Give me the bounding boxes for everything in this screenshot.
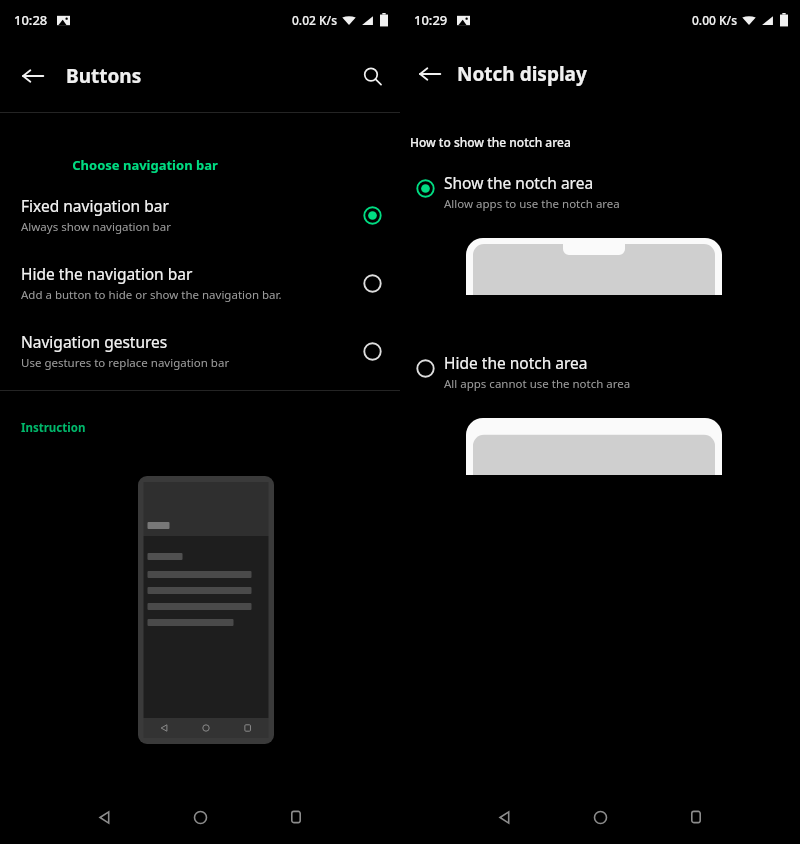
staticText: 10:29 (414, 11, 448, 29)
button[interactable]: Search (350, 54, 394, 98)
staticText: Show the notch area (444, 172, 594, 193)
staticText: Instruction (21, 420, 86, 436)
staticText: 0.02 K/s (292, 12, 338, 28)
button[interactable]: Recent apps (676, 797, 716, 837)
staticText: All apps cannot use the notch area (444, 376, 631, 392)
staticText: How to show the notch area (410, 134, 571, 150)
button[interactable]: Home (180, 797, 220, 837)
staticText: Buttons (66, 63, 142, 89)
button[interactable]: Unselected option (350, 329, 394, 373)
staticText: Hide the navigation bar (21, 263, 193, 284)
button[interactable]: Selected option (400, 172, 800, 216)
button[interactable]: Unselected option (350, 261, 394, 305)
button[interactable]: Back (484, 797, 524, 837)
button[interactable]: Selected option (403, 166, 447, 210)
button[interactable]: Recent apps (276, 797, 316, 837)
button[interactable]: Hide the navigation bar (0, 261, 400, 305)
staticText: Always show navigation bar (21, 219, 171, 235)
button[interactable]: Home (580, 797, 620, 837)
button[interactable]: Unselected option (400, 352, 800, 396)
button[interactable]: Fixed navigation bar (0, 193, 400, 237)
staticText: Add a button to hide or show the navigat… (21, 287, 282, 303)
button[interactable]: Unselected option (403, 346, 447, 390)
staticText: Notch display (457, 61, 587, 87)
button[interactable]: Back (11, 54, 55, 98)
staticText: Fixed navigation bar (21, 195, 169, 216)
button[interactable]: Selected option (350, 193, 394, 237)
button[interactable]: Navigation gestures (0, 329, 400, 373)
button[interactable]: Back (84, 797, 124, 837)
staticText: Hide the notch area (444, 352, 588, 373)
staticText: Use gestures to replace navigation bar (21, 355, 230, 371)
staticText: Navigation gestures (21, 331, 168, 352)
staticText: Allow apps to use the notch area (444, 196, 620, 212)
staticText: 10:28 (14, 11, 48, 29)
button[interactable]: Back (408, 52, 452, 96)
staticText: 0.00 K/s (692, 12, 738, 28)
staticText: Choose navigation bar (0, 156, 290, 174)
